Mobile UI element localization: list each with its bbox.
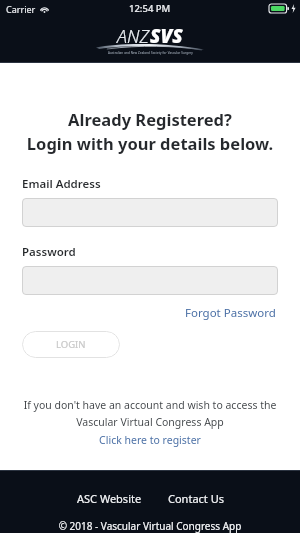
- staticText: 12:54 PM: [129, 2, 171, 15]
- staticText: LOGIN: [56, 338, 86, 351]
- staticText: Contact Us: [168, 491, 224, 506]
- button[interactable]: Contact Us: [164, 489, 228, 508]
- button[interactable]: Click here to register: [96, 432, 204, 448]
- staticText: Login with your details below.: [0, 132, 300, 154]
- staticText: Email Address: [22, 176, 101, 192]
- button[interactable]: Forgot Password: [183, 303, 278, 323]
- staticText: If you don't have an account and wish to…: [18, 398, 282, 412]
- staticText: Australian and New Zealand Society for V…: [108, 51, 193, 55]
- staticText: Already Registered?: [0, 108, 300, 130]
- button[interactable]: ASC Website: [73, 489, 146, 508]
- staticText: Forgot Password: [185, 305, 276, 321]
- button[interactable]: Text input field: [22, 198, 278, 227]
- staticText: Click here to register: [99, 433, 201, 447]
- button[interactable]: Text input field: [22, 266, 278, 295]
- staticText: Carrier: [6, 3, 36, 15]
- staticText: © 2018 - Vascular Virtual Congress App: [0, 519, 300, 533]
- staticText: ASC Website: [77, 491, 142, 506]
- staticText: SVS: [150, 23, 183, 49]
- button[interactable]: ANZSVS home: [90, 22, 210, 58]
- staticText: Password: [22, 244, 76, 260]
- staticText: Vascular Virtual Congress App: [18, 415, 282, 429]
- staticText: ANZ: [117, 24, 150, 49]
- button[interactable]: LOGIN: [22, 331, 120, 358]
